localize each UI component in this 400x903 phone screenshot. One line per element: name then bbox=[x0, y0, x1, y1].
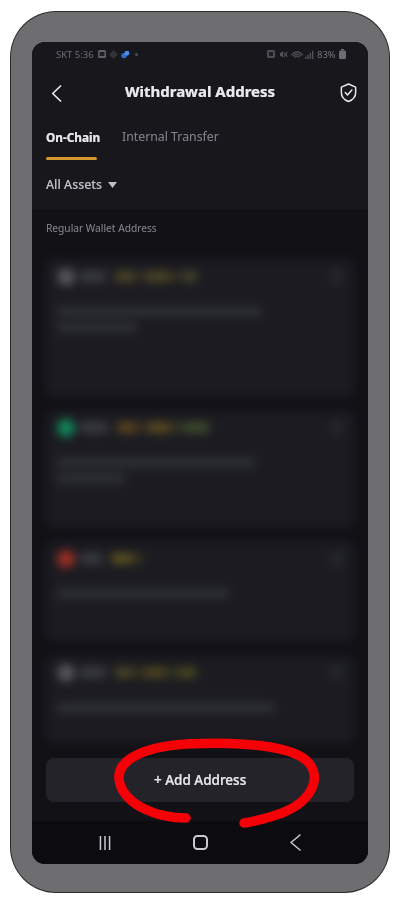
button[interactable] bbox=[45, 259, 355, 397]
button[interactable]: + Add Address bbox=[46, 758, 354, 802]
staticText: Withdrawal Address bbox=[125, 81, 276, 101]
staticText: SKT 5:36 bbox=[56, 48, 94, 61]
staticText: On-Chain bbox=[46, 129, 101, 145]
staticText: Internal Transfer bbox=[122, 128, 219, 145]
button[interactable]: Recent apps bbox=[83, 821, 127, 864]
button[interactable]: All Assets bbox=[32, 176, 127, 193]
staticText: Regular Wallet Address bbox=[46, 221, 157, 235]
button[interactable] bbox=[45, 541, 355, 642]
staticText: All Assets bbox=[46, 176, 103, 193]
button[interactable]: Back bbox=[36, 71, 76, 111]
button[interactable]: On-Chain bbox=[32, 129, 111, 145]
staticText: + Add Address bbox=[154, 771, 247, 789]
button[interactable] bbox=[45, 655, 355, 743]
staticText: 83% bbox=[317, 48, 336, 61]
button[interactable]: Internal Transfer bbox=[111, 128, 229, 145]
button[interactable]: Security bbox=[328, 71, 368, 111]
button[interactable]: Home bbox=[178, 821, 222, 864]
button[interactable]: Back bbox=[273, 821, 317, 864]
button[interactable] bbox=[45, 410, 355, 528]
